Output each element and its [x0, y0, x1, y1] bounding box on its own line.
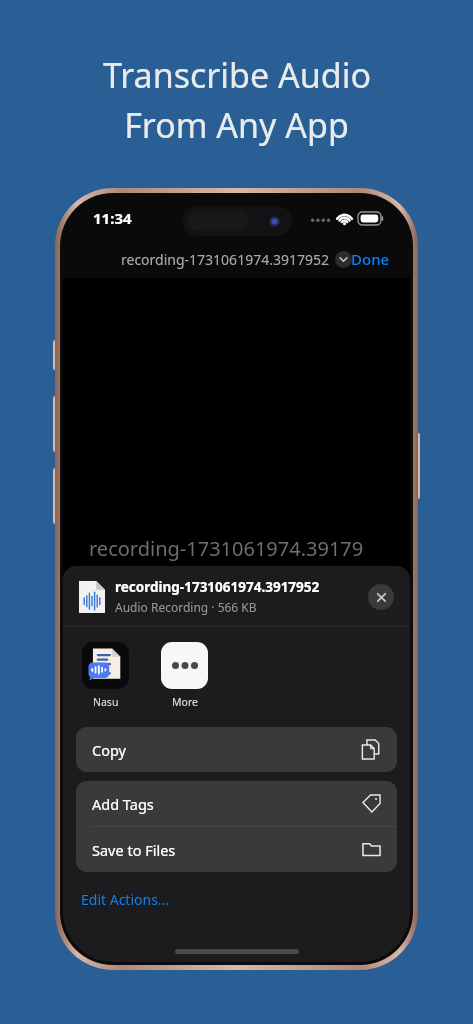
- staticText: Copy: [92, 740, 362, 760]
- staticText: More: [172, 695, 198, 709]
- button[interactable]: Add Tags: [76, 781, 397, 826]
- staticText: Add Tags: [92, 794, 362, 814]
- button[interactable]: Show options: [335, 251, 352, 268]
- button[interactable]: Copy: [76, 727, 397, 772]
- staticText: Done: [351, 249, 390, 269]
- button[interactable]: Close: [368, 584, 394, 610]
- button[interactable]: More: [159, 640, 210, 711]
- staticText: From Any App: [124, 102, 349, 148]
- staticText: Save to Files: [92, 840, 362, 860]
- staticText: Edit Actions...: [81, 890, 170, 909]
- button[interactable]: Done: [331, 243, 410, 275]
- button[interactable]: Edit Actions...: [76, 884, 175, 915]
- staticText: 11:34: [93, 208, 132, 228]
- staticText: recording-1731061974.39179: [89, 535, 364, 562]
- staticText: Audio Recording · 566 KB: [115, 599, 257, 615]
- staticText: recording-1731061974.3917952: [121, 250, 329, 269]
- staticText: recording-1731061974.3917952: [115, 578, 320, 596]
- staticText: Transcribe Audio: [103, 52, 371, 98]
- staticText: Nasu: [93, 695, 119, 709]
- button[interactable]: Nasu: [80, 640, 131, 711]
- button[interactable]: Save to Files: [76, 827, 397, 872]
